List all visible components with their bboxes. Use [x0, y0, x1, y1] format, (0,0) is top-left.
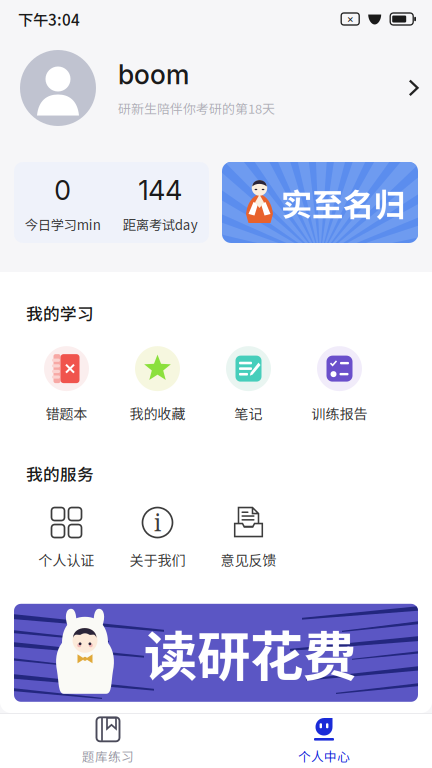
button[interactable]: 错题本 [21, 346, 112, 423]
staticText: 笔记 [234, 403, 262, 423]
button[interactable]: 题库练习 [0, 714, 216, 768]
button[interactable]: 个人中心 [216, 714, 432, 768]
button[interactable]: 训练报告 [294, 346, 385, 423]
staticText: 个人认证 [38, 549, 94, 570]
staticText: 读研花费 [144, 614, 356, 691]
staticText: 144 [138, 174, 182, 206]
staticText: 关于我们 [129, 549, 185, 570]
staticText: boom [118, 58, 189, 91]
staticText: 今日学习min [25, 214, 101, 234]
staticText: 我的收藏 [129, 403, 185, 423]
staticText: 训练报告 [311, 403, 367, 423]
staticText: 我的学习 [26, 301, 94, 325]
staticText: 意见反馈 [220, 549, 276, 570]
button[interactable]: 笔记 [203, 346, 294, 423]
staticText: 研新生陪伴你考研的第18天 [118, 99, 275, 117]
staticText: 实至名归 [281, 180, 405, 225]
staticText: 错题本 [45, 403, 87, 423]
staticText: i [154, 507, 161, 538]
button[interactable]: 读研花费 [0, 604, 432, 702]
staticText: × [347, 12, 354, 25]
button[interactable]: boom [0, 38, 432, 138]
button[interactable]: 个人认证 [21, 506, 112, 570]
button[interactable]: 意见反馈 [203, 506, 294, 570]
staticText: 个人中心 [298, 747, 350, 765]
staticText: 0 [54, 174, 71, 206]
staticText: 我的服务 [26, 461, 94, 485]
button[interactable]: 0 [14, 162, 209, 243]
staticText: 距离考试day [123, 214, 198, 234]
staticText: 题库练习 [82, 747, 134, 765]
button[interactable]: 我的收藏 [112, 346, 203, 423]
staticText: 下午3:04 [18, 8, 80, 30]
button[interactable]: 实至名归 [222, 162, 418, 243]
button[interactable]: i [112, 506, 203, 570]
